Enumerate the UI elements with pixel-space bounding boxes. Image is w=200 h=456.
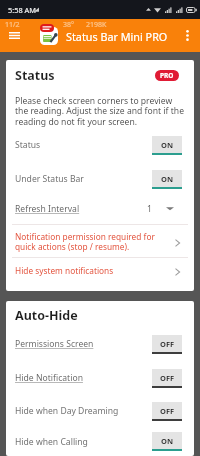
staticText: 38°: [63, 20, 75, 30]
button[interactable]: Permissions Screen: [6, 327, 194, 361]
staticText: Hide system notifications: [15, 265, 165, 276]
button[interactable]: OFF: [152, 402, 182, 421]
staticText: Refresh Interval: [15, 203, 80, 215]
staticText: OFF: [160, 373, 175, 383]
staticText: OFF: [160, 339, 175, 349]
button[interactable]: Open navigation menu: [2, 25, 27, 46]
staticText: 5:58 AM: [8, 5, 37, 15]
staticText: Notification permission required for qui…: [15, 231, 165, 252]
button[interactable]: More options: [178, 24, 196, 46]
staticText: 1: [147, 203, 152, 215]
button[interactable]: OFF: [152, 335, 182, 354]
button[interactable]: ON: [152, 432, 182, 451]
staticText: ON: [161, 436, 174, 446]
button[interactable]: Refresh Interval: [6, 196, 194, 221]
staticText: Hide when Calling: [15, 436, 88, 448]
button[interactable]: Under Status Bar: [6, 162, 194, 196]
button[interactable]: OFF: [152, 369, 182, 388]
staticText: 11/2: [5, 20, 20, 30]
staticText: Status: [15, 67, 55, 84]
button[interactable]: Status: [6, 128, 194, 162]
button[interactable]: ON: [152, 170, 182, 189]
staticText: PRO: [160, 71, 174, 80]
staticText: Hide Notification: [15, 372, 83, 384]
staticText: ON: [161, 174, 174, 184]
button[interactable]: ON: [152, 136, 182, 155]
staticText: Hide when Day Dreaming: [15, 405, 119, 417]
staticText: OFF: [160, 406, 175, 416]
button[interactable]: Hide when Day Dreaming: [6, 395, 194, 427]
staticText: Status: [15, 139, 41, 151]
staticText: Permissions Screen: [15, 338, 94, 350]
button[interactable]: Hide when Calling: [6, 427, 194, 456]
staticText: 2198K: [86, 20, 107, 30]
button[interactable]: Hide Notification: [6, 361, 194, 395]
staticText: Status Bar Mini PRO: [66, 29, 168, 44]
staticText: Auto-Hide: [15, 307, 78, 324]
staticText: Please check screen corners to preview t…: [15, 95, 186, 128]
staticText: Under Status Bar: [15, 173, 84, 185]
button[interactable]: Hide system notifications: [6, 258, 194, 282]
staticText: ON: [161, 140, 174, 150]
button[interactable]: Notification permission required for qui…: [6, 225, 194, 257]
